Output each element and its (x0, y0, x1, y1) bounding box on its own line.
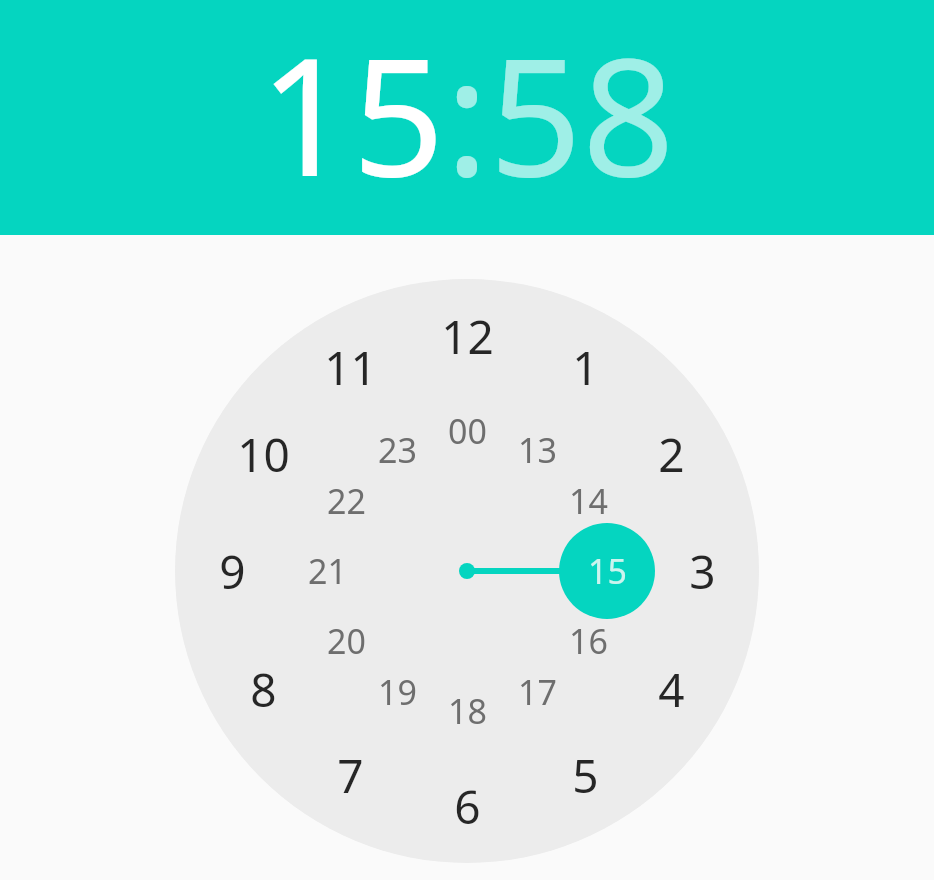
staticText: 10 (237, 423, 290, 486)
button[interactable]: 20 (306, 601, 386, 681)
button[interactable]: 2 (631, 414, 711, 494)
staticText: 1 (572, 336, 599, 399)
button[interactable]: 13 (497, 410, 577, 490)
button[interactable]: 9 (192, 531, 272, 611)
button[interactable]: 00 (427, 391, 507, 471)
staticText: 23 (378, 427, 417, 473)
button[interactable]: 5 (545, 735, 625, 815)
staticText: 13 (518, 427, 557, 473)
staticText: 19 (378, 669, 417, 715)
staticText: 8 (250, 658, 277, 721)
staticText: 11 (324, 336, 377, 399)
staticText: 3 (689, 540, 716, 603)
button[interactable]: 12 (427, 296, 507, 376)
staticText: 18 (448, 688, 487, 734)
button[interactable]: 24 hour clock face (175, 279, 759, 863)
button[interactable]: 14 (548, 461, 628, 541)
button[interactable]: 18 (427, 671, 507, 751)
button[interactable]: 16 (548, 601, 628, 681)
staticText: 12 (441, 305, 494, 368)
button[interactable]: 19 (357, 652, 437, 732)
button[interactable]: 23 (357, 410, 437, 490)
button[interactable]: 58 (489, 3, 675, 224)
button[interactable]: 4 (631, 649, 711, 729)
staticText: 7 (337, 744, 364, 807)
staticText: 00 (448, 408, 487, 454)
staticText: 16 (569, 618, 608, 664)
staticText: 6 (454, 775, 481, 838)
staticText: 17 (518, 669, 557, 715)
staticText: 22 (327, 478, 366, 524)
button[interactable]: 8 (223, 649, 303, 729)
button[interactable]: 21 (287, 531, 367, 611)
staticText: 2 (658, 423, 685, 486)
button[interactable]: 7 (310, 735, 390, 815)
staticText: 9 (219, 540, 246, 603)
staticText: 4 (658, 658, 685, 721)
button[interactable]: 15 (259, 3, 445, 224)
button[interactable]: 3 (662, 531, 742, 611)
staticText: 21 (308, 548, 347, 594)
button[interactable]: 17 (497, 652, 577, 732)
staticText: 15 (588, 548, 627, 594)
button[interactable]: 6 (427, 766, 507, 846)
staticText: 14 (569, 478, 608, 524)
button[interactable]: 15 (567, 531, 647, 611)
staticText: 20 (327, 618, 366, 664)
button[interactable]: 10 (223, 414, 303, 494)
staticText: 5 (572, 744, 599, 807)
button[interactable]: 11 (310, 327, 390, 407)
button[interactable]: 22 (306, 461, 386, 541)
button[interactable]: 1 (545, 327, 625, 407)
staticText: : (445, 3, 489, 224)
